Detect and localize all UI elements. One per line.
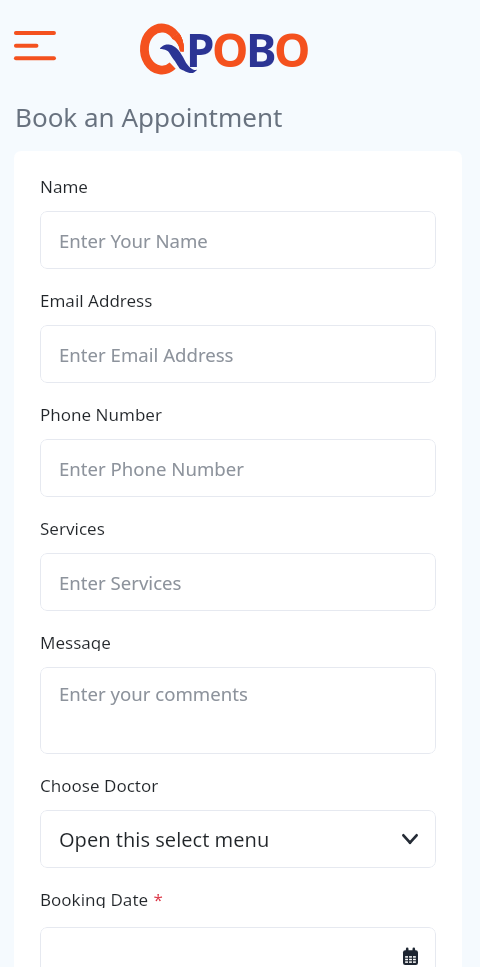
staticText: Message: [40, 631, 111, 651]
button[interactable]: Enter Services: [40, 553, 436, 611]
staticText: Phone Number: [40, 403, 162, 423]
staticText: Booking Date: [40, 888, 149, 908]
button[interactable]: Enter Email Address: [40, 325, 436, 383]
staticText: O: [212, 18, 246, 81]
staticText: Enter your comments: [59, 681, 248, 706]
staticText: Open this select menu: [59, 826, 402, 853]
staticText: *: [149, 888, 163, 908]
staticText: Email Address: [40, 289, 153, 309]
staticText: Name: [40, 175, 88, 195]
staticText: Services: [40, 517, 105, 537]
staticText: Enter Email Address: [59, 342, 234, 367]
staticText: Enter Your Name: [59, 228, 208, 253]
staticText: P: [186, 18, 212, 81]
button[interactable]: Open navigation menu: [6, 22, 62, 68]
button[interactable]: Open this select menu: [40, 810, 436, 868]
button[interactable]: Enter your comments: [40, 667, 436, 754]
staticText: O: [274, 18, 308, 81]
button[interactable]: Pick booking date: [40, 927, 436, 967]
staticText: Enter Services: [59, 570, 182, 595]
button[interactable]: Enter Phone Number: [40, 439, 436, 497]
staticText: B: [246, 18, 274, 81]
button[interactable]: Enter Your Name: [40, 211, 436, 269]
staticText: Enter Phone Number: [59, 456, 244, 481]
staticText: Book an Appointment: [15, 99, 283, 134]
staticText: Choose Doctor: [40, 774, 159, 794]
